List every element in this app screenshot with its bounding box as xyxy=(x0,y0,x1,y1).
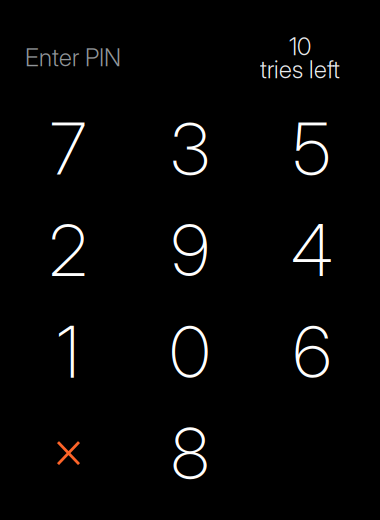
button[interactable]: 1 xyxy=(7,301,129,403)
button[interactable]: 0 xyxy=(129,301,251,403)
button[interactable]: 2 xyxy=(7,200,129,301)
button[interactable]: 7 xyxy=(7,98,129,200)
button[interactable]: 3 xyxy=(129,98,251,200)
staticText: 10 xyxy=(289,32,311,61)
staticText: 1 xyxy=(56,309,79,395)
staticText: tries left xyxy=(260,55,340,84)
button[interactable]: Delete xyxy=(7,403,129,504)
button[interactable]: 8 xyxy=(129,403,251,504)
staticText: 4 xyxy=(291,208,333,293)
staticText: 7 xyxy=(50,106,86,191)
staticText: 8 xyxy=(171,411,209,496)
staticText: 5 xyxy=(293,106,331,191)
button[interactable]: 4 xyxy=(251,200,373,301)
button[interactable]: 5 xyxy=(251,98,373,200)
button[interactable]: 9 xyxy=(129,200,251,301)
staticText: Enter PIN xyxy=(25,43,121,72)
staticText: 3 xyxy=(170,106,209,191)
staticText: 2 xyxy=(49,208,87,293)
staticText: 9 xyxy=(171,208,209,293)
staticText: 0 xyxy=(169,309,210,395)
staticText: 6 xyxy=(293,309,331,395)
button[interactable]: 6 xyxy=(251,301,373,403)
